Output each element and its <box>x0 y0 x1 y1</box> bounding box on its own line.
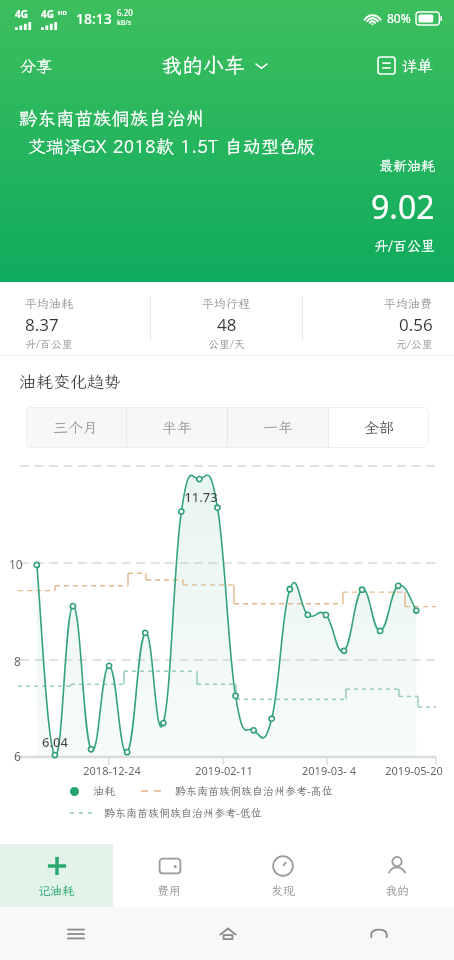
staticText: 公里/天 <box>208 337 245 351</box>
staticText: 详单 <box>401 55 434 76</box>
staticText: 元/公里 <box>396 337 433 351</box>
staticText: 我的 <box>385 883 410 899</box>
staticText: 8.37 <box>25 313 59 336</box>
staticText: 油耗 <box>93 784 115 798</box>
staticText: 48 <box>217 313 237 336</box>
staticText: 黔东南苗族侗族自治州参考-高位 <box>175 784 333 798</box>
staticText: 黔东南苗族侗族自治州参考-低位 <box>104 806 262 820</box>
button[interactable]: 费用 <box>113 844 226 907</box>
staticText: 4G <box>41 7 54 21</box>
staticText: 升/百公里 <box>25 337 73 351</box>
button[interactable]: back <box>303 907 454 960</box>
staticText: 11.73 <box>171 488 231 506</box>
staticText: 一年 <box>263 418 294 438</box>
staticText: 艾瑞泽GX 2018款 1.5T 自动型色版 <box>28 134 315 158</box>
staticText: 半年 <box>162 418 193 438</box>
button[interactable]: 三个月 <box>26 407 126 448</box>
button[interactable]: 详单 <box>374 51 438 80</box>
staticText: 油耗变化趋势 <box>19 370 121 392</box>
staticText: 最新油耗 <box>379 157 435 175</box>
staticText: 2018-12-24 <box>80 763 144 778</box>
staticText: 我的小车 <box>161 51 245 79</box>
button[interactable]: 发现 <box>226 844 340 907</box>
staticText: 2019-05-20 <box>382 763 446 778</box>
staticText: 8 <box>14 653 21 669</box>
staticText: 0.56 <box>399 313 433 336</box>
staticText: 全部 <box>364 418 395 438</box>
staticText: 2019-02-11 <box>192 763 256 778</box>
staticText: 平均油耗 <box>25 296 74 312</box>
staticText: kB/s <box>117 18 132 28</box>
staticText: 9.02 <box>371 185 435 229</box>
staticText: 升/百公里 <box>374 237 435 255</box>
button[interactable]: 全部 <box>329 407 429 448</box>
button[interactable]: 我的小车 <box>157 47 273 83</box>
button[interactable]: home <box>152 907 303 960</box>
button[interactable]: 一年 <box>228 407 328 448</box>
staticText: 分享 <box>20 55 53 76</box>
staticText: 2019-03- 4 <box>297 763 361 778</box>
staticText: 平均油费 <box>384 296 433 312</box>
button[interactable]: 我的 <box>340 844 454 907</box>
staticText: 4G <box>15 7 28 21</box>
button[interactable]: 分享 <box>16 51 57 80</box>
staticText: HD <box>58 9 67 17</box>
staticText: 6.04 <box>25 733 85 751</box>
staticText: 18:13 <box>76 9 112 28</box>
staticText: 80% <box>387 10 411 26</box>
staticText: 发现 <box>271 883 296 899</box>
staticText: 黔东南苗族侗族自治州 <box>19 106 205 130</box>
button[interactable]: menu <box>0 907 152 960</box>
button[interactable]: 记油耗 <box>0 844 113 907</box>
staticText: 6 <box>14 748 21 764</box>
staticText: 10 <box>9 556 23 572</box>
staticText: 记油耗 <box>38 883 75 899</box>
staticText: 费用 <box>157 883 182 899</box>
staticText: 6.20 <box>117 7 133 18</box>
button[interactable]: 半年 <box>127 407 227 448</box>
staticText: 平均行程 <box>202 296 251 312</box>
staticText: 三个月 <box>53 418 99 438</box>
